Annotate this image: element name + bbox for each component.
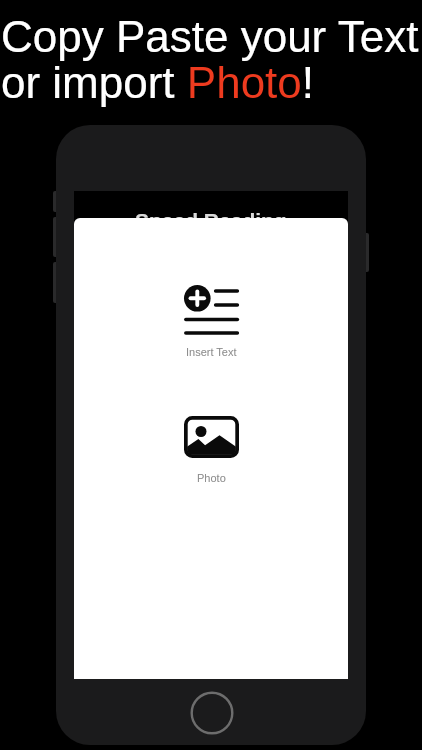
button[interactable]: Home <box>190 691 234 735</box>
staticText: Speed Reading <box>135 209 287 232</box>
staticText: Copy Paste your Text or import Photo! <box>1 12 419 107</box>
staticText: Insert Text <box>186 346 237 358</box>
button[interactable]: Insert Text <box>176 277 246 358</box>
staticText: Photo <box>197 472 226 484</box>
button[interactable]: Photo <box>176 408 246 484</box>
